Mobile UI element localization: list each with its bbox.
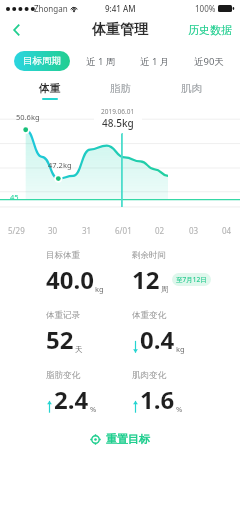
staticText: 52: [46, 323, 74, 356]
staticText: 5/29: [8, 225, 25, 236]
staticText: 脂肪: [110, 82, 131, 95]
staticText: 天: [75, 345, 83, 354]
staticText: 47.2kg: [48, 160, 72, 170]
staticText: 04: [222, 225, 232, 236]
button[interactable]: 近90天: [192, 51, 226, 72]
staticText: 45: [10, 192, 19, 202]
staticText: 03: [189, 225, 199, 236]
staticText: 50.6kg: [16, 112, 40, 122]
staticText: 体重: [39, 82, 60, 95]
staticText: 1.6: [140, 383, 175, 416]
staticText: 31: [82, 225, 92, 236]
staticText: 9:41 AM: [105, 3, 136, 14]
staticText: 0.4: [140, 323, 175, 356]
staticText: 近90天: [194, 55, 224, 68]
staticText: kg: [95, 284, 104, 294]
button[interactable]: 近 1 月: [138, 51, 172, 72]
staticText: 脂肪变化: [46, 370, 80, 381]
staticText: 2.4: [54, 383, 89, 416]
staticText: 100%: [195, 3, 216, 14]
button[interactable]: 体重: [35, 82, 64, 100]
staticText: 肌肉: [181, 82, 202, 95]
button[interactable]: 肌肉: [177, 82, 206, 100]
button[interactable]: Back: [0, 16, 34, 44]
staticText: %: [90, 404, 97, 414]
staticText: 历史数据: [188, 23, 232, 37]
staticText: kg: [176, 344, 185, 354]
button[interactable]: 近 1 周: [84, 51, 118, 72]
staticText: 近 1 周: [86, 55, 116, 68]
staticText: 重置目标: [106, 432, 150, 446]
staticText: 12: [132, 263, 160, 296]
staticText: 40.0: [46, 263, 94, 296]
staticText: 剩余时间: [132, 250, 166, 261]
button[interactable]: 重置目标: [30, 424, 210, 453]
button[interactable]: 历史数据: [188, 23, 232, 37]
staticText: 6/01: [115, 225, 132, 236]
staticText: 体重记录: [46, 310, 80, 321]
staticText: 体重管理: [92, 21, 148, 39]
staticText: 肌肉变化: [132, 370, 166, 381]
staticText: 02: [155, 225, 165, 236]
staticText: Zhongan: [34, 3, 68, 14]
staticText: 目标体重: [46, 250, 80, 261]
staticText: 近 1 月: [140, 55, 170, 68]
staticText: 至7月12日: [176, 275, 207, 284]
staticText: %: [176, 404, 183, 414]
staticText: 48.5kg: [102, 116, 134, 130]
button[interactable]: 脂肪: [106, 82, 135, 100]
staticText: 周: [161, 285, 169, 294]
staticText: 2019.06.01: [101, 107, 135, 116]
staticText: 目标周期: [23, 55, 61, 67]
button[interactable]: 目标周期: [14, 51, 70, 71]
staticText: 体重变化: [132, 310, 166, 321]
staticText: 30: [48, 225, 58, 236]
